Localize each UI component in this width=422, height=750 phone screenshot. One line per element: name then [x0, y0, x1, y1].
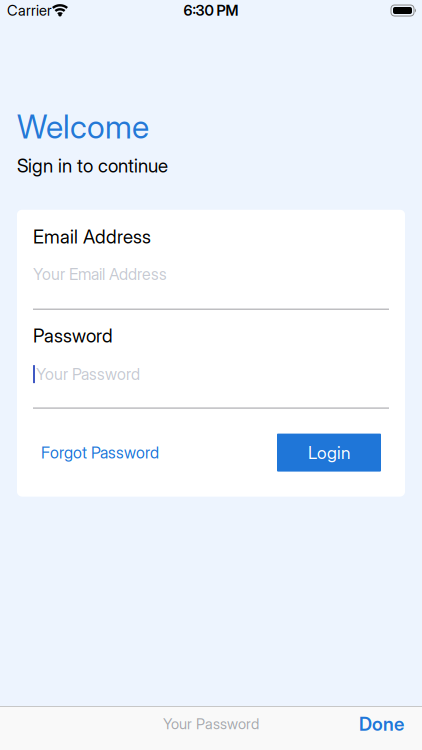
staticText: Password — [33, 325, 113, 347]
staticText: Your Email Address — [33, 265, 167, 284]
staticText: Carrier — [7, 2, 52, 19]
button[interactable]: Done — [359, 717, 422, 739]
button[interactable]: Login — [277, 434, 389, 472]
button[interactable]: Forgot Password — [33, 443, 159, 462]
staticText: 6:30 PM — [183, 2, 238, 19]
staticText: Login — [308, 442, 350, 463]
staticText: Done — [359, 713, 404, 735]
staticText: Your Password — [36, 365, 140, 384]
staticText: Your Password — [163, 715, 259, 733]
staticText: Sign in to continue — [17, 155, 168, 177]
staticText: Email Address — [33, 226, 151, 248]
staticText: Forgot Password — [41, 443, 159, 462]
staticText: Welcome — [17, 108, 149, 146]
